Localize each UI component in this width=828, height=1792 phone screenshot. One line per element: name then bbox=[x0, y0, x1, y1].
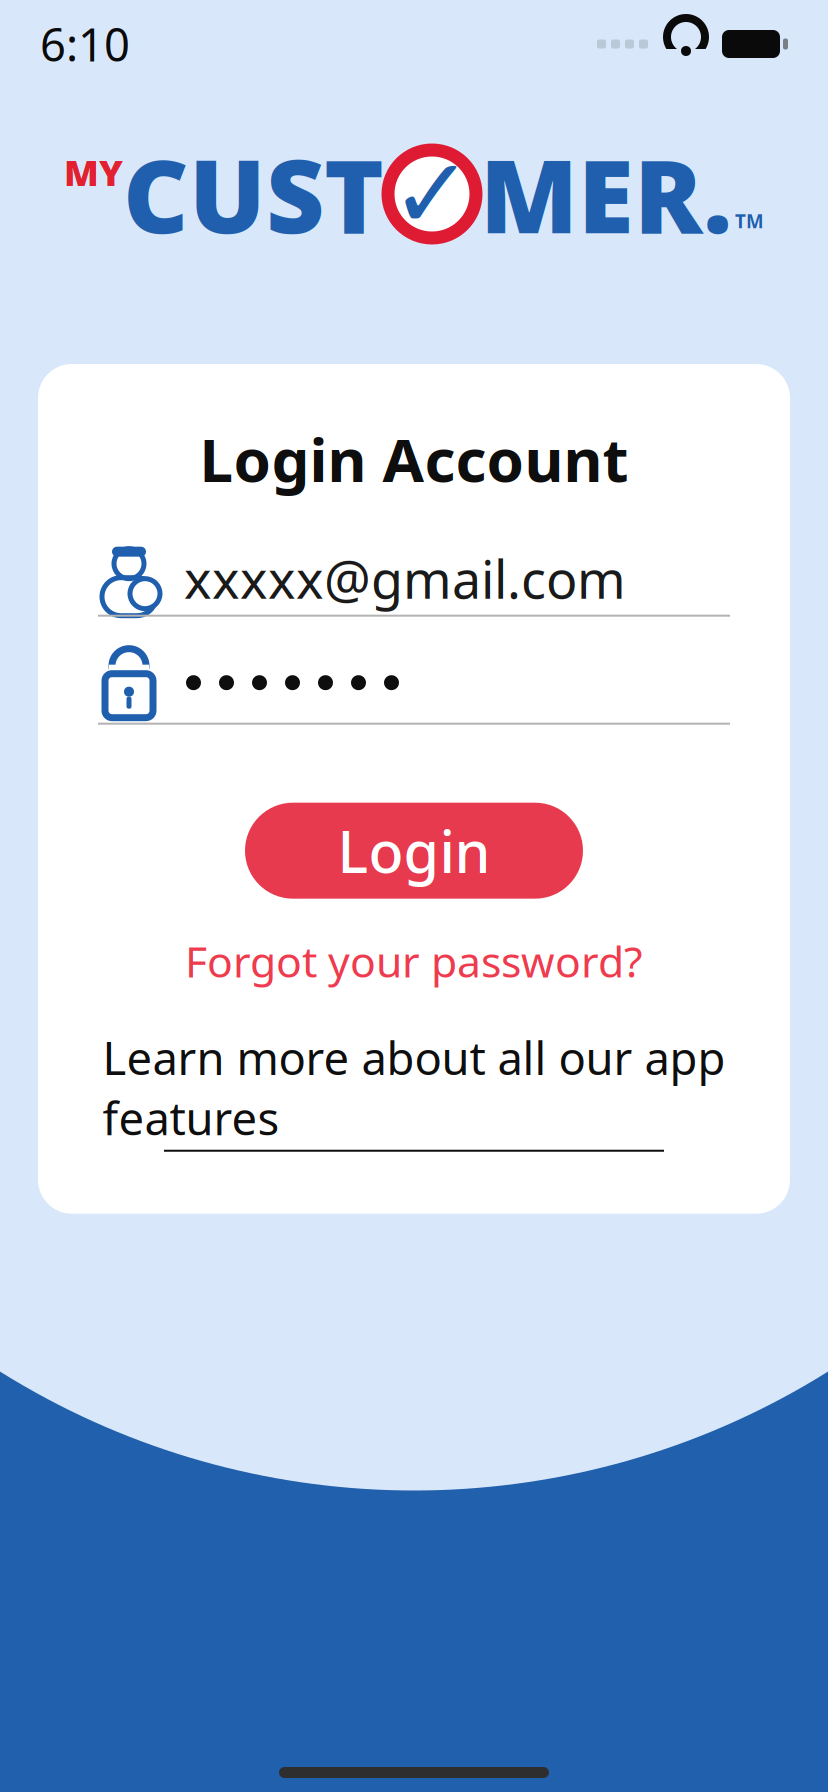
staticText: ✓ bbox=[390, 138, 473, 250]
button[interactable]: Forgot your password? bbox=[169, 923, 659, 999]
staticText: TM bbox=[735, 209, 764, 233]
staticText: CUST bbox=[123, 127, 384, 261]
staticText: 6:10 bbox=[40, 14, 130, 74]
staticText: Login Account bbox=[199, 419, 628, 499]
staticText: MER. bbox=[480, 127, 732, 261]
button[interactable]: Login bbox=[245, 803, 583, 899]
staticText: MY bbox=[64, 148, 123, 196]
staticText: Forgot your password? bbox=[185, 933, 643, 989]
staticText: xxxxx@gmail.com bbox=[184, 544, 626, 613]
button[interactable]: Learn more about all our app features bbox=[90, 1021, 737, 1158]
staticText: Learn more about all our app features bbox=[102, 1027, 725, 1148]
staticText: Login bbox=[337, 813, 490, 889]
